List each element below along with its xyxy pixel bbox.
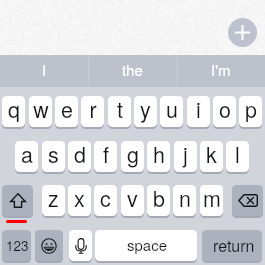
button[interactable]: q (2, 96, 25, 129)
button[interactable]: Dictate (69, 230, 92, 263)
button[interactable]: o (213, 96, 236, 129)
button[interactable]: r (81, 96, 104, 129)
button[interactable]: i (187, 96, 210, 129)
button[interactable]: k (200, 141, 223, 174)
button[interactable]: x (68, 185, 91, 218)
staticText: z (48, 185, 59, 213)
button[interactable]: s (42, 141, 65, 174)
button[interactable]: return (202, 230, 262, 263)
staticText: y (140, 96, 151, 124)
button[interactable]: w (29, 96, 52, 129)
staticText: q (8, 96, 20, 124)
button[interactable]: c (94, 185, 117, 218)
staticText: p (245, 96, 257, 124)
button[interactable]: Backspace (232, 185, 263, 218)
staticText: o (219, 96, 231, 124)
staticText: t (117, 96, 123, 124)
staticText: h (153, 141, 165, 169)
button[interactable]: y (134, 96, 157, 129)
staticText: s (48, 141, 59, 169)
staticText: return (213, 234, 255, 257)
staticText: the (122, 59, 143, 80)
button[interactable]: v (121, 185, 144, 218)
staticText: r (89, 96, 97, 124)
staticText: a (21, 141, 33, 169)
button[interactable]: Emoji (35, 230, 63, 263)
button[interactable]: p (239, 96, 262, 129)
button[interactable]: Add (228, 18, 257, 47)
button[interactable]: Numbers (2, 230, 31, 263)
staticText: w (33, 96, 49, 124)
staticText: g (127, 141, 139, 169)
staticText: c (100, 185, 111, 213)
button[interactable]: e (55, 96, 78, 129)
button[interactable]: z (42, 185, 65, 218)
staticText: u (166, 96, 178, 124)
button[interactable]: d (68, 141, 91, 174)
button[interactable]: a (15, 141, 38, 174)
button[interactable]: the (88, 55, 176, 87)
staticText: f (103, 141, 109, 169)
staticText: x (74, 185, 85, 213)
button[interactable]: n (173, 185, 196, 218)
button[interactable]: f (94, 141, 117, 174)
button[interactable]: g (121, 141, 144, 174)
staticText: 123 (6, 236, 29, 255)
staticText: e (61, 96, 73, 124)
button[interactable]: b (147, 185, 170, 218)
button[interactable]: h (147, 141, 170, 174)
staticText: d (74, 141, 86, 169)
button[interactable]: t (108, 96, 131, 129)
staticText: l (235, 141, 240, 169)
button[interactable]: j (174, 141, 197, 174)
staticText: v (127, 185, 138, 213)
button[interactable]: u (160, 96, 183, 129)
staticText: j (183, 141, 188, 169)
staticText: m (203, 185, 221, 213)
button[interactable]: space (95, 230, 197, 263)
button[interactable]: Shift (2, 185, 33, 218)
staticText: b (153, 185, 165, 213)
staticText: n (179, 185, 191, 213)
staticText: I'm (211, 59, 231, 80)
button[interactable]: m (200, 185, 223, 218)
button[interactable]: I (0, 55, 88, 87)
staticText: I (42, 59, 47, 80)
button[interactable]: I'm (177, 55, 265, 87)
button[interactable]: l (226, 141, 249, 174)
staticText: k (206, 141, 217, 169)
staticText: space (127, 234, 168, 255)
staticText: i (196, 96, 201, 124)
